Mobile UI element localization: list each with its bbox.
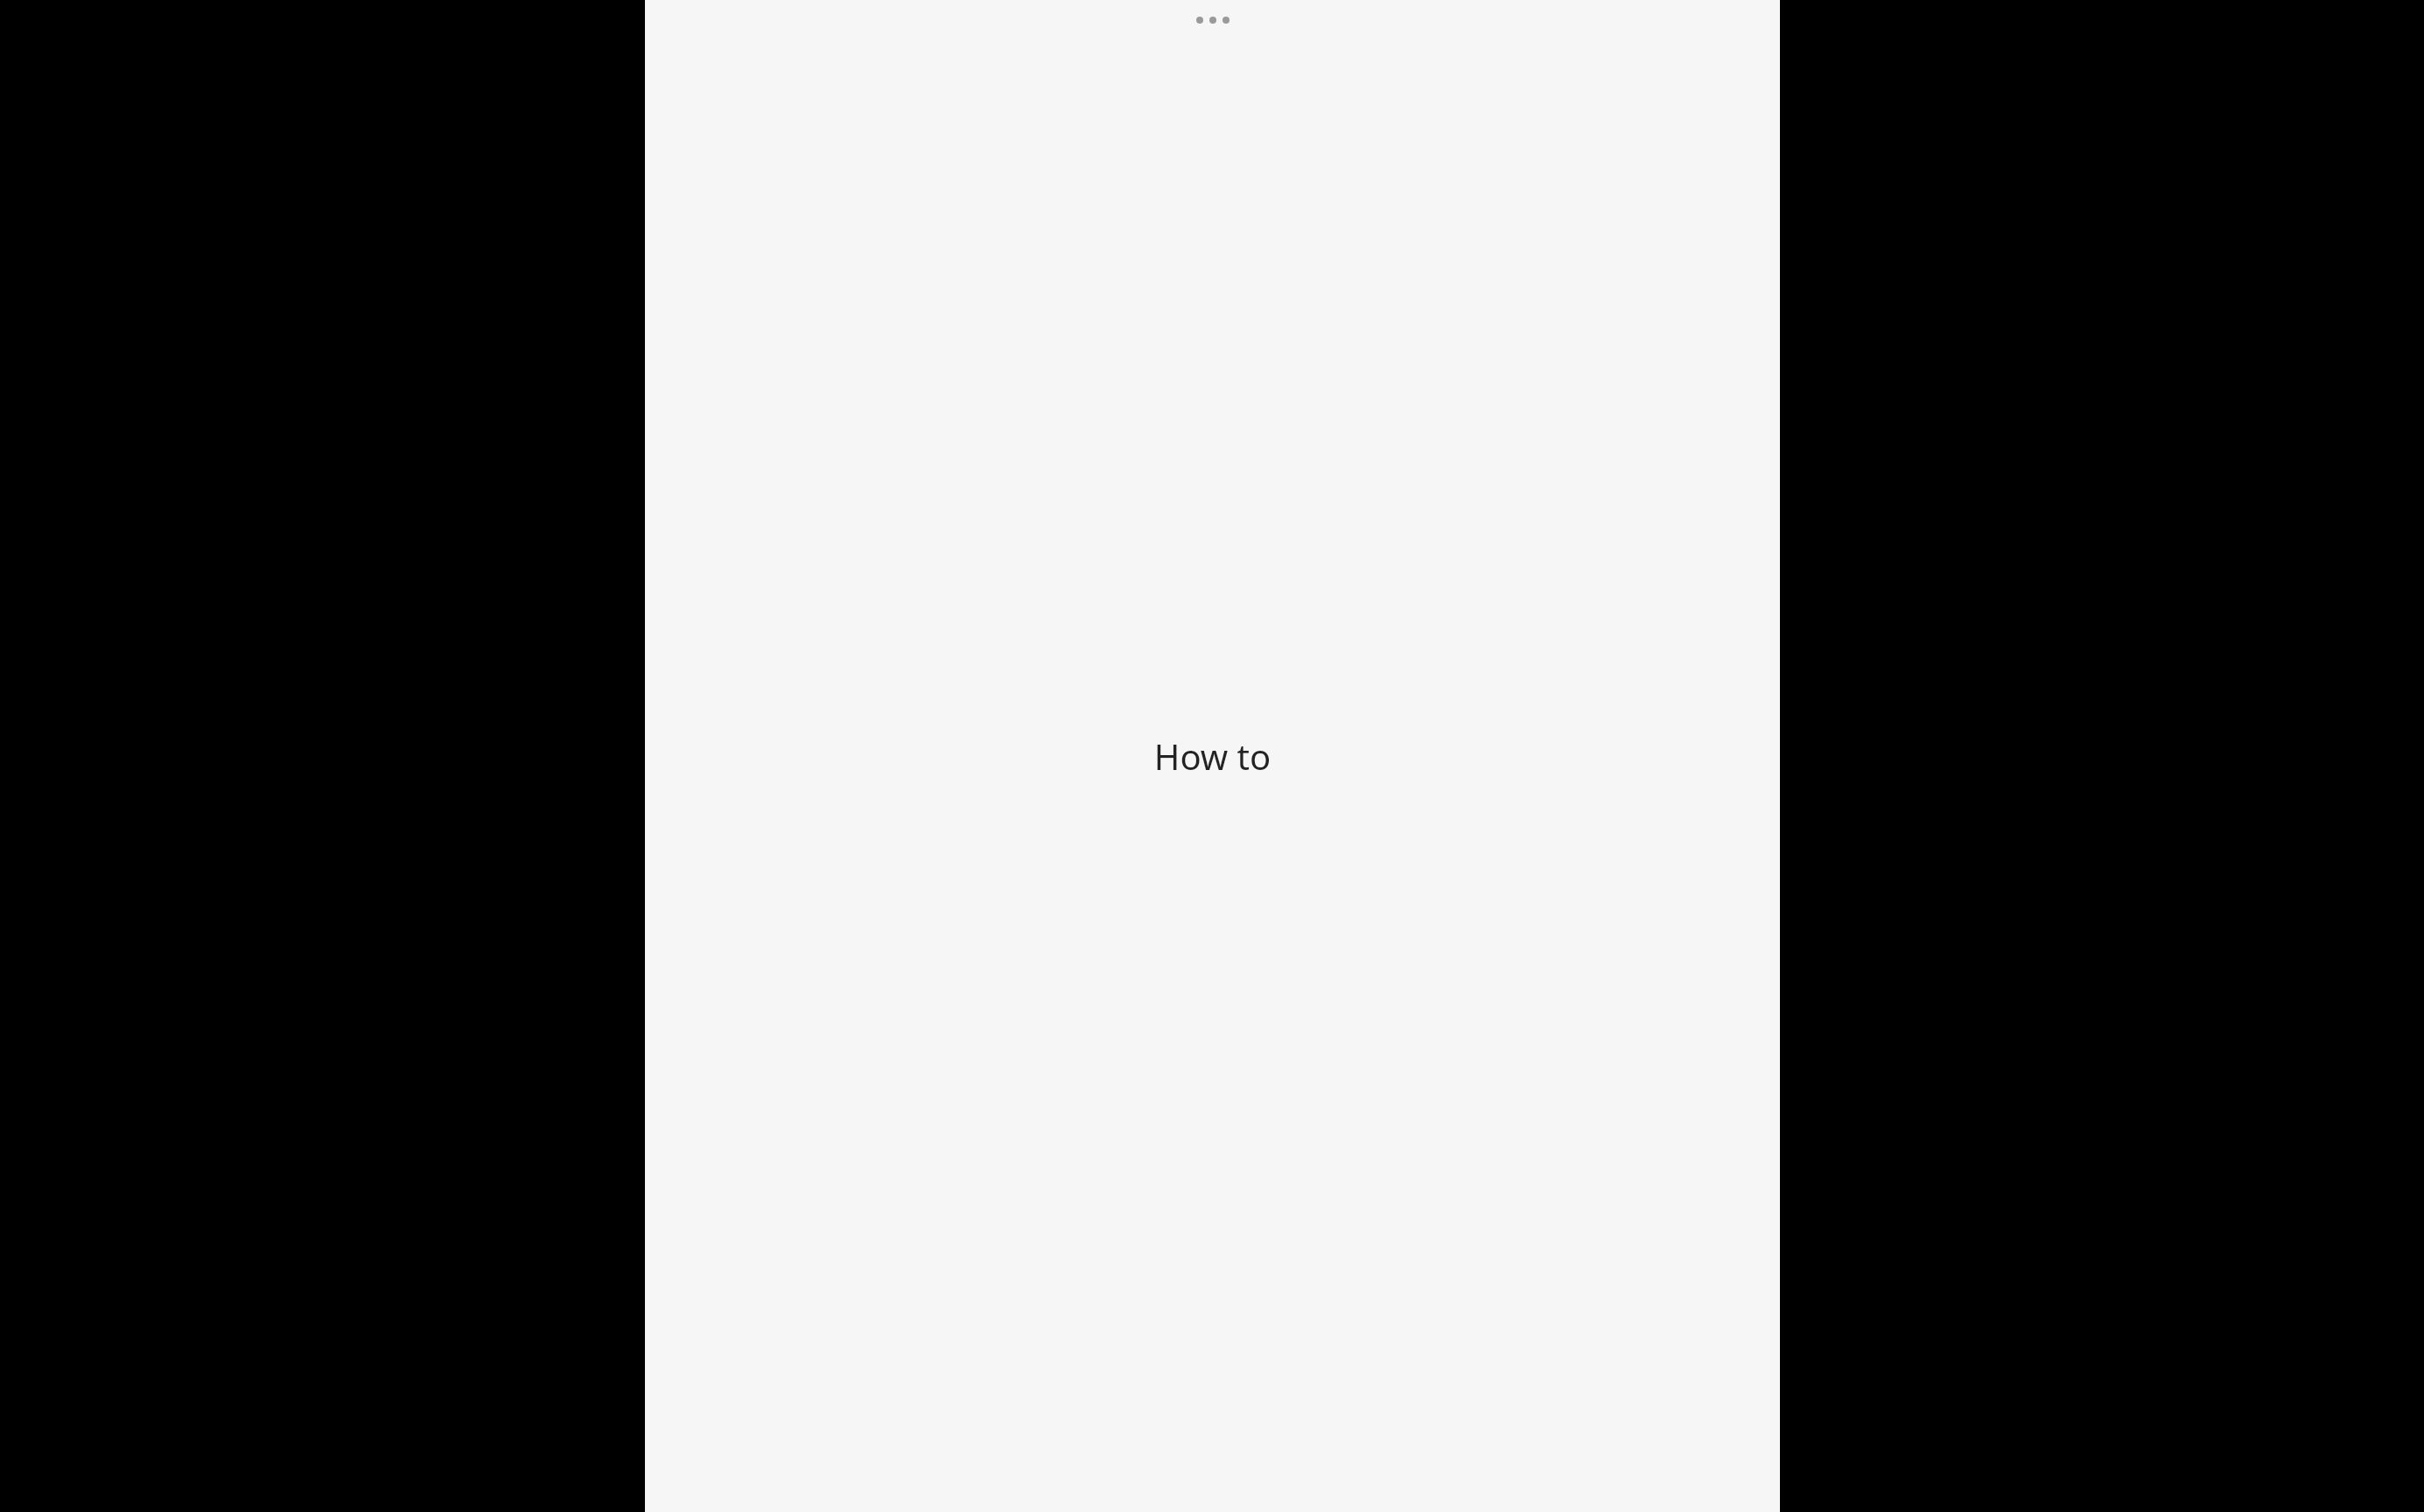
staticText: How to (645, 732, 1780, 780)
button[interactable]: More options (1191, 13, 1235, 27)
